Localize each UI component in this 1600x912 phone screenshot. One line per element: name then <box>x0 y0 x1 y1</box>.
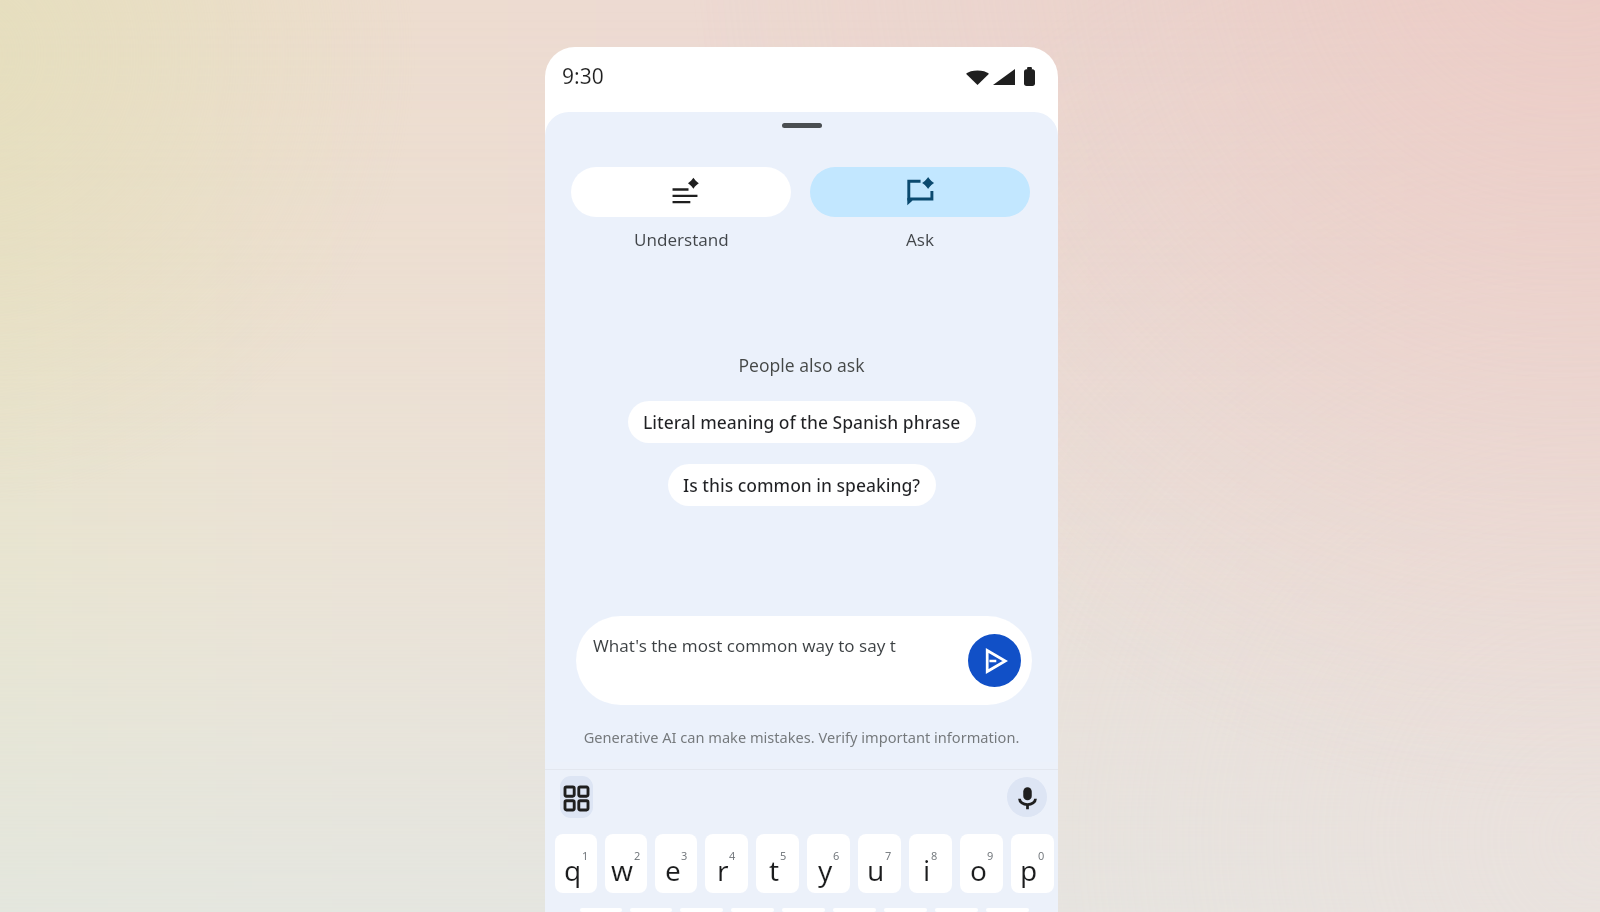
staticText: q <box>564 851 582 889</box>
staticText: 8 <box>931 848 938 863</box>
button[interactable]: Literal meaning of the Spanish phrase <box>628 401 976 443</box>
staticText: 0 <box>1038 848 1045 863</box>
staticText: 3 <box>681 848 688 863</box>
button[interactable]: o <box>960 834 1003 893</box>
staticText: p <box>1020 851 1038 889</box>
staticText: y <box>818 851 833 889</box>
button[interactable]: What's the most common way to say t <box>576 616 1032 705</box>
staticText: 7 <box>885 848 892 863</box>
button[interactable]: q <box>555 834 597 893</box>
staticText: Ask <box>906 228 935 251</box>
staticText: 5 <box>780 848 787 863</box>
button[interactable]: Understand <box>571 167 791 217</box>
button[interactable]: r <box>705 834 748 893</box>
staticText: e <box>665 851 681 889</box>
staticText: u <box>867 851 885 889</box>
button[interactable]: Keyboard layout <box>560 776 593 818</box>
staticText: 9 <box>987 848 994 863</box>
staticText: 4 <box>729 848 736 863</box>
staticText: Is this common in speaking? <box>683 473 921 497</box>
staticText: Literal meaning of the Spanish phrase <box>643 410 961 434</box>
staticText: Generative AI can make mistakes. Verify … <box>545 727 1058 747</box>
button[interactable]: u <box>858 834 901 893</box>
button[interactable]: Is this common in speaking? <box>668 464 936 506</box>
staticText: 9:30 <box>562 62 604 91</box>
staticText: w <box>611 851 634 889</box>
button[interactable]: w <box>605 834 647 893</box>
staticText: 2 <box>634 848 641 863</box>
staticText: What's the most common way to say t <box>593 634 896 657</box>
staticText: 6 <box>833 848 840 863</box>
button[interactable]: Voice input <box>1007 777 1047 817</box>
button[interactable]: Ask <box>810 167 1030 217</box>
staticText: o <box>970 851 987 889</box>
button[interactable]: Send <box>968 634 1021 687</box>
staticText: Understand <box>634 228 729 251</box>
staticText: r <box>717 851 729 889</box>
staticText: t <box>769 851 780 889</box>
button[interactable]: t <box>756 834 799 893</box>
button[interactable]: y <box>807 834 850 893</box>
button[interactable]: i <box>909 834 952 893</box>
button[interactable]: p <box>1011 834 1054 893</box>
staticText: People also ask <box>545 353 1058 377</box>
staticText: 1 <box>582 848 589 863</box>
staticText: i <box>923 851 931 889</box>
button[interactable]: e <box>655 834 697 893</box>
